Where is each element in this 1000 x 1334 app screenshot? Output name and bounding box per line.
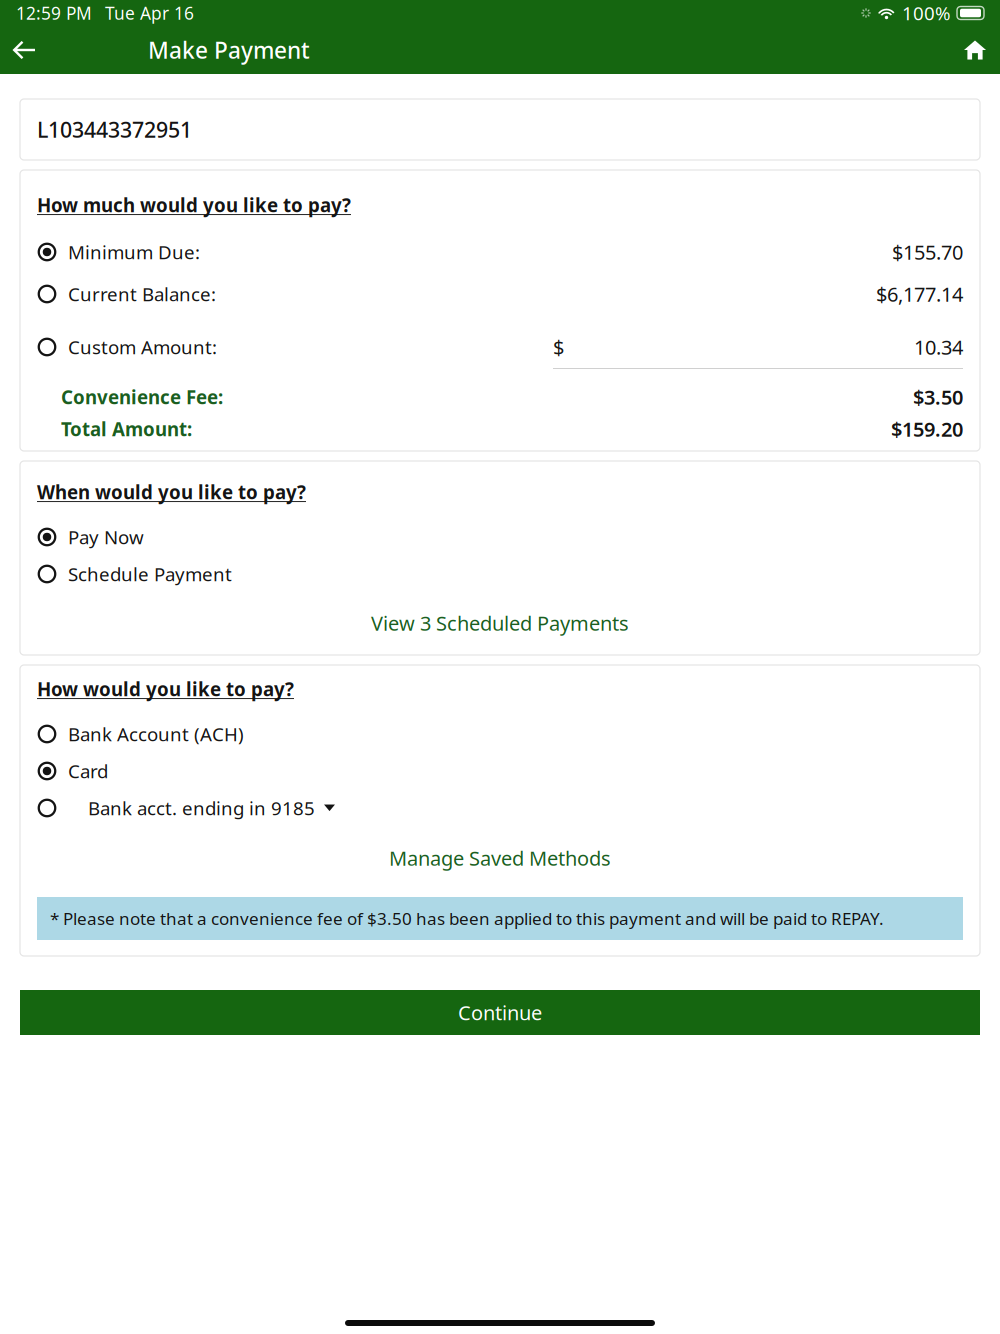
button[interactable]: Pay Now (37, 524, 963, 550)
staticText: $6,177.14 (876, 281, 963, 307)
button[interactable]: Back (0, 28, 49, 71)
staticText: Manage Saved Methods (389, 845, 611, 871)
staticText: Schedule Payment (68, 562, 232, 586)
staticText: Bank Account (ACH) (68, 722, 244, 746)
button[interactable]: Card (37, 758, 963, 784)
staticText: 10.34 (914, 334, 963, 360)
staticText: $155.70 (892, 239, 963, 265)
staticText: Current Balance: (68, 282, 216, 306)
staticText: $ (553, 334, 564, 360)
staticText: Bank acct. ending in 9185 (88, 796, 315, 820)
staticText: * Please note that a convenience fee of … (50, 907, 884, 930)
staticText: Make Payment (148, 35, 310, 65)
button[interactable]: View 3 Scheduled Payments (37, 610, 963, 636)
button[interactable]: Current Balance: (37, 281, 963, 307)
staticText: $159.20 (891, 416, 963, 442)
staticText: Minimum Due: (68, 240, 200, 264)
staticText: Total Amount: (61, 417, 192, 441)
button[interactable]: Continue (20, 990, 980, 1035)
staticText: View 3 Scheduled Payments (371, 610, 629, 636)
button[interactable]: Schedule Payment (37, 561, 963, 587)
staticText: How much would you like to pay? (37, 193, 351, 217)
button[interactable]: Bank Account (ACH) (37, 721, 963, 747)
staticText: Card (68, 759, 108, 783)
button[interactable]: Minimum Due: (37, 239, 963, 265)
staticText: Tue Apr 16 (105, 1, 194, 24)
staticText: Convenience Fee: (61, 385, 223, 409)
staticText: Pay Now (68, 525, 144, 549)
button[interactable]: Bank acct. ending in 9185 (37, 795, 963, 821)
button[interactable]: Manage Saved Methods (37, 845, 963, 871)
staticText: How would you like to pay? (37, 677, 294, 701)
staticText: 100% (902, 1, 951, 25)
staticText: 12:59 PM (16, 1, 92, 24)
staticText: $3.50 (913, 384, 963, 410)
button[interactable]: Custom Amount: (37, 334, 217, 360)
staticText: Custom Amount: (68, 335, 217, 359)
staticText: L103443372951 (37, 115, 192, 144)
button[interactable]: Home (950, 28, 1000, 71)
staticText: When would you like to pay? (37, 480, 306, 504)
staticText: Continue (458, 999, 542, 1026)
